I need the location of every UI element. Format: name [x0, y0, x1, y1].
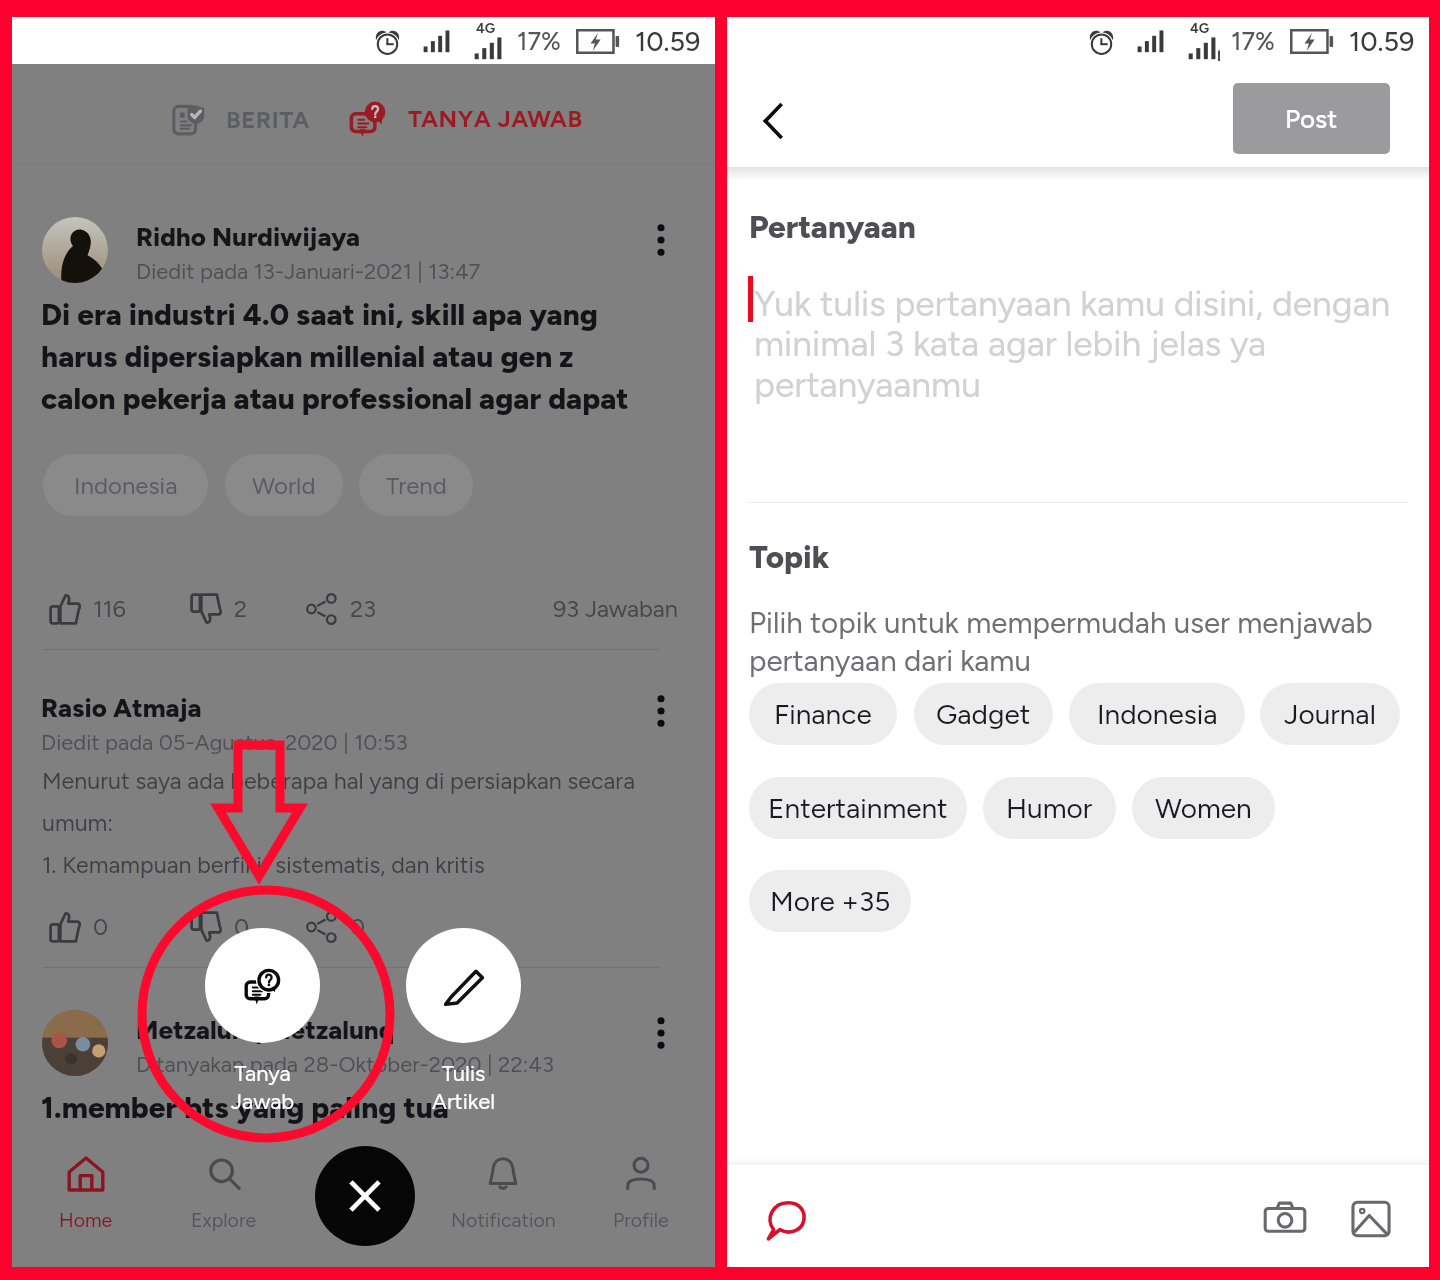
staticText: 0 [350, 913, 366, 941]
staticText: More +35 [770, 884, 891, 918]
staticText: 93 Jawaban [553, 595, 678, 623]
staticText: 17% [517, 26, 561, 56]
button[interactable]: Entertainment [749, 777, 967, 839]
button[interactable]: Post [1233, 83, 1390, 154]
staticText: 10.59 [1349, 25, 1415, 57]
staticText: Menurut saya ada beberapa hal yang di pe… [42, 767, 644, 837]
button[interactable]: Explore [154, 1142, 294, 1267]
button[interactable]: Back [749, 95, 801, 147]
staticText: Yuk tulis pertanyaan kamu disini, dengan… [754, 282, 1422, 406]
staticText: 4G [1190, 20, 1210, 37]
button[interactable]: BERITA [170, 91, 310, 147]
staticText: Rasio Atmaja [41, 692, 202, 723]
button[interactable]: World [225, 454, 343, 516]
staticText: Finance [774, 697, 872, 731]
button[interactable]: Camera [1261, 1195, 1309, 1243]
staticText: Artikel [406, 1088, 521, 1114]
button[interactable]: More options [644, 1016, 678, 1050]
button[interactable]: Close menu [315, 1146, 415, 1246]
staticText: Pertanyaan [749, 208, 916, 246]
staticText: Tulis [406, 1060, 521, 1086]
button[interactable]: Like [49, 593, 126, 625]
staticText: Entertainment [768, 791, 948, 825]
button[interactable]: Notification [433, 1142, 573, 1267]
staticText: Trend [386, 471, 447, 500]
button[interactable]: Gadget [914, 683, 1053, 745]
button[interactable]: More options [644, 694, 678, 728]
staticText: Explore [191, 1208, 257, 1231]
button[interactable]: Share [306, 593, 376, 625]
staticText: TANYA JAWAB [408, 104, 583, 133]
staticText: Journal [1284, 697, 1376, 731]
staticText: Ditanyakan pada 28-Oktober-2020 | 22:43 [136, 1051, 554, 1077]
staticText: Ridho Nurdiwijaya [136, 221, 361, 252]
button[interactable]: Indonesia [1069, 683, 1245, 745]
staticText: BERITA [226, 105, 310, 134]
button[interactable]: Humor [983, 777, 1116, 839]
button[interactable]: Finance [749, 683, 897, 745]
staticText: Women [1155, 791, 1252, 825]
staticText: World [252, 471, 316, 500]
button[interactable]: Dislike [190, 911, 250, 943]
staticText: 0 [93, 913, 109, 941]
staticText: 23 [350, 595, 376, 623]
staticText: Diedit pada 13-Januari-2021 | 13:47 [136, 258, 481, 284]
button[interactable]: Trend [359, 454, 473, 516]
staticText: Profile [613, 1208, 669, 1231]
staticText: Pilih topik untuk mempermudah user menja… [749, 605, 1409, 678]
staticText: Post [1285, 103, 1338, 134]
button[interactable]: Journal [1260, 683, 1400, 745]
staticText: 116 [93, 595, 126, 623]
button[interactable]: Home [16, 1142, 156, 1267]
button[interactable]: TANYA JAWAB [348, 89, 583, 147]
button[interactable]: Indonesia [43, 454, 208, 516]
button[interactable]: More options [644, 223, 678, 257]
button[interactable]: Comment [760, 1193, 812, 1245]
button[interactable]: Share [306, 911, 366, 943]
staticText: Topik [749, 538, 830, 576]
staticText: Home [59, 1208, 113, 1231]
staticText: Indonesia [74, 471, 178, 500]
button[interactable]: Women [1132, 777, 1275, 839]
staticText: Tanya [205, 1060, 320, 1086]
staticText: Diedit pada 05-Agustus-2020 | 10:53 [41, 729, 408, 755]
button[interactable]: More +35 [749, 870, 911, 932]
staticText: Indonesia [1097, 697, 1218, 731]
staticText: Di era industri 4.0 saat ini, skill apa … [41, 297, 649, 417]
staticText: Humor [1006, 791, 1093, 825]
staticText: 10.59 [635, 25, 701, 57]
staticText: 0 [234, 913, 250, 941]
button[interactable]: Profile [571, 1142, 711, 1267]
staticText: Gadget [936, 697, 1031, 731]
button[interactable]: Gallery [1347, 1195, 1395, 1243]
staticText: Metzalunq Metzalunq [136, 1014, 395, 1045]
button[interactable]: Dislike [190, 593, 248, 625]
staticText: 1.member bts yang paling tua [41, 1090, 449, 1126]
staticText: 17% [1231, 26, 1275, 56]
button[interactable]: Tulis Artikel [406, 928, 521, 1043]
button[interactable]: Tanya Jawab [205, 928, 320, 1043]
staticText: 2 [234, 595, 248, 623]
staticText: Jawab [205, 1088, 320, 1114]
staticText: 1. Kemampuan berfikir sistematis, dan kr… [42, 851, 644, 879]
staticText: Notification [451, 1208, 556, 1231]
button[interactable]: Like [49, 911, 109, 943]
staticText: 4G [476, 20, 496, 37]
